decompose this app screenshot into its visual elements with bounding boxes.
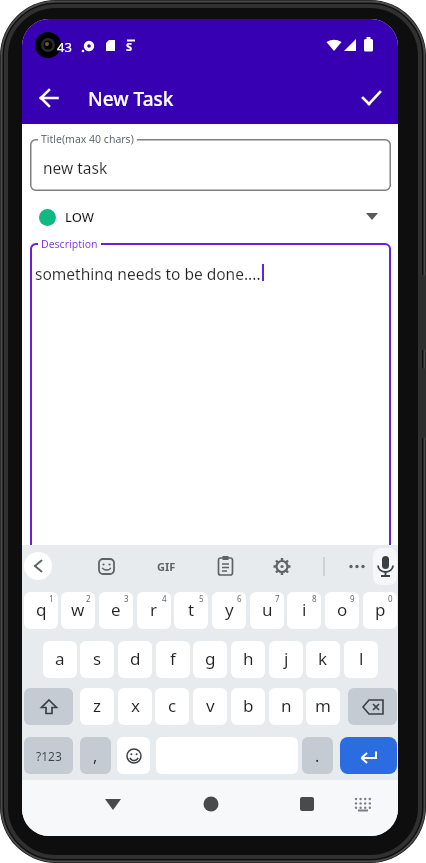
staticText: a	[55, 647, 65, 670]
button[interactable]: w	[61, 592, 95, 629]
button[interactable]: i	[287, 592, 321, 629]
staticText: p	[375, 598, 386, 621]
button[interactable]: t	[174, 592, 208, 629]
staticText: e	[111, 598, 121, 621]
staticText: 4	[162, 593, 167, 604]
button[interactable]	[356, 83, 390, 113]
button[interactable]: f	[156, 641, 190, 678]
staticText: 8	[312, 593, 317, 604]
staticText: c	[168, 694, 177, 717]
button[interactable]: n	[269, 688, 303, 725]
button[interactable]	[340, 737, 397, 774]
staticText: s	[93, 647, 102, 670]
staticText: 2	[86, 593, 91, 604]
staticText: j	[284, 647, 289, 670]
button[interactable]: h	[231, 641, 265, 678]
staticText: z	[93, 694, 101, 717]
staticText: q	[36, 598, 47, 621]
staticText: i	[302, 598, 307, 621]
staticText: 5	[199, 593, 204, 604]
button[interactable]: x	[118, 688, 152, 725]
button[interactable]: g	[193, 641, 227, 678]
staticText: .	[315, 745, 320, 767]
staticText: k	[318, 647, 328, 670]
button[interactable]: l	[344, 641, 378, 678]
button[interactable]: j	[269, 641, 303, 678]
button[interactable]	[373, 548, 397, 585]
button[interactable]: m	[306, 688, 340, 725]
button[interactable]	[30, 83, 68, 113]
button[interactable]	[193, 790, 229, 826]
staticText: u	[262, 598, 273, 621]
button[interactable]	[95, 790, 131, 826]
button[interactable]	[344, 790, 380, 826]
button[interactable]: p	[363, 592, 397, 629]
staticText: l	[359, 647, 364, 670]
button[interactable]: e	[99, 592, 133, 629]
staticText: 43	[57, 38, 72, 56]
button[interactable]	[291, 790, 327, 826]
staticText: y	[225, 598, 234, 621]
staticText: Description	[41, 237, 98, 251]
staticText: m	[315, 694, 331, 717]
button[interactable]: q	[24, 592, 58, 629]
button[interactable]: s	[80, 641, 114, 678]
button[interactable]: Title(max 40 chars)	[41, 132, 134, 146]
staticText: S	[126, 39, 133, 54]
staticText: b	[243, 694, 254, 717]
staticText: ,	[93, 745, 98, 767]
staticText: something needs to be done....	[35, 263, 261, 281]
button[interactable]: r	[137, 592, 171, 629]
button[interactable]: c	[155, 688, 189, 725]
staticText: LOW	[65, 208, 94, 226]
staticText: t	[188, 598, 195, 621]
button[interactable]: y	[212, 592, 246, 629]
staticText: 3	[124, 593, 129, 604]
staticText: 7	[275, 593, 280, 604]
button[interactable]: ?123	[24, 737, 73, 774]
staticText: 6	[237, 593, 242, 604]
button[interactable]	[117, 737, 150, 774]
button[interactable]	[24, 688, 73, 725]
staticText: x	[131, 694, 140, 717]
staticText: d	[130, 647, 141, 670]
button[interactable]: LOW	[30, 203, 391, 231]
staticText: h	[243, 647, 254, 670]
button[interactable]: b	[231, 688, 265, 725]
button[interactable]	[24, 552, 52, 580]
staticText: o	[337, 598, 348, 621]
button[interactable]: v	[193, 688, 227, 725]
button[interactable]	[348, 688, 397, 725]
button[interactable]: ,	[80, 737, 111, 774]
button[interactable]: o	[325, 592, 359, 629]
button[interactable]: a	[43, 641, 77, 678]
staticText: f	[170, 647, 176, 670]
staticText: r	[150, 598, 158, 621]
staticText: 0	[388, 593, 393, 604]
staticText: new task	[43, 157, 108, 178]
staticText: ?123	[36, 748, 62, 764]
button[interactable]: k	[306, 641, 340, 678]
button[interactable]: GIF	[157, 559, 176, 574]
staticText: w	[71, 598, 85, 621]
staticText: New Task	[88, 86, 174, 112]
button[interactable]: .	[302, 737, 333, 774]
button[interactable]: z	[80, 688, 114, 725]
staticText: v	[206, 694, 215, 717]
button[interactable]: d	[118, 641, 152, 678]
staticText: n	[281, 694, 292, 717]
staticText: 1	[49, 593, 54, 604]
button[interactable]: u	[250, 592, 284, 629]
staticText: 9	[350, 593, 355, 604]
staticText: g	[205, 647, 216, 670]
